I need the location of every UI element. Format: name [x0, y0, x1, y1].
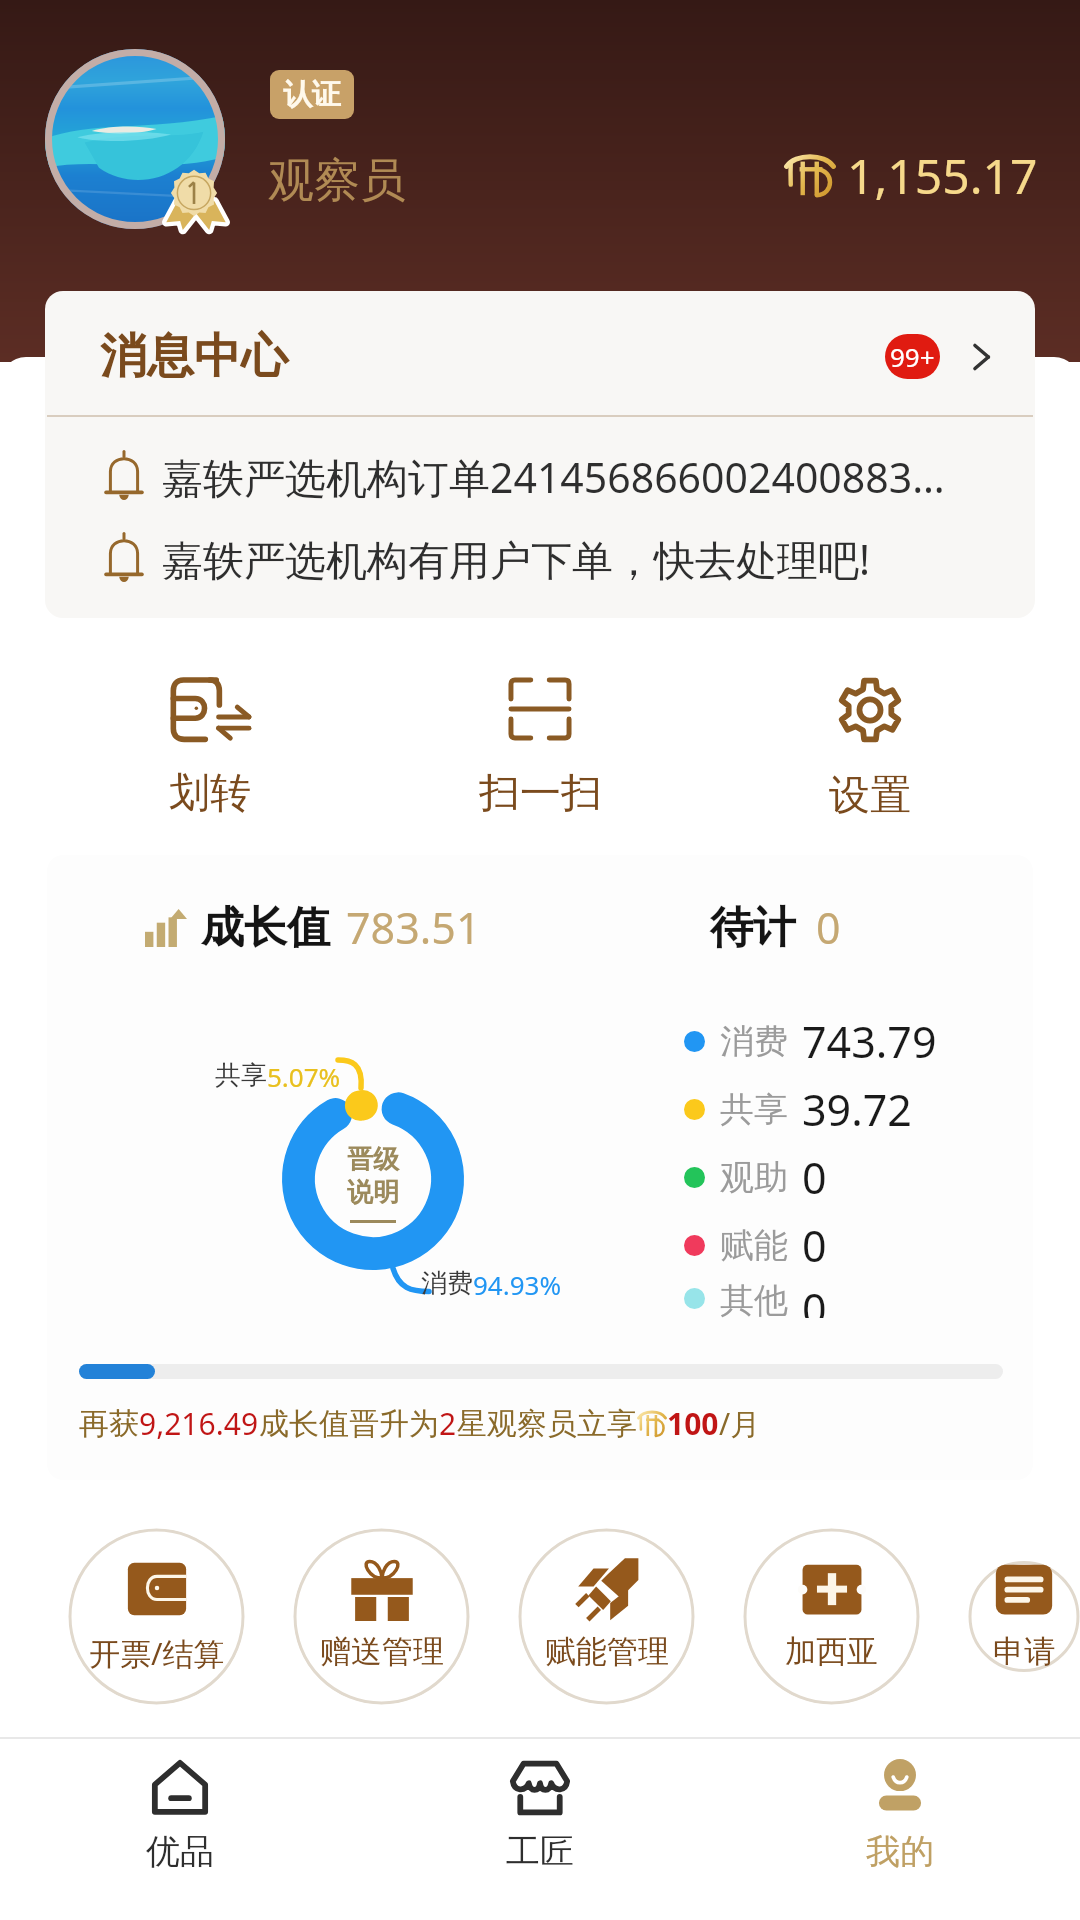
staticText: 嘉轶严选机构订单241456866002400883…	[162, 449, 945, 505]
staticText: 再获	[79, 1405, 139, 1443]
staticText: 赋能管理	[545, 1632, 669, 1671]
staticText: 说明	[347, 1176, 399, 1209]
button[interactable]: 工匠	[360, 1739, 720, 1920]
button[interactable]: 嘉轶严选机构订单241456866002400883…	[45, 446, 1035, 508]
staticText: 100	[667, 1403, 719, 1444]
staticText: 赋能	[720, 1224, 788, 1267]
staticText: 39.72	[802, 1080, 912, 1139]
staticText: 晋级	[347, 1143, 399, 1176]
button[interactable]: 优品	[0, 1739, 360, 1920]
staticText: 划转	[169, 768, 251, 820]
staticText: 其他	[720, 1279, 788, 1318]
staticText: 消息中心	[100, 327, 288, 386]
staticText: 2	[439, 1403, 457, 1444]
button[interactable]: 消息中心	[45, 291, 1035, 415]
button[interactable]: 划转	[120, 660, 300, 820]
staticText: 观助	[720, 1156, 788, 1199]
staticText: 94.93%	[473, 1267, 562, 1302]
button[interactable]: 嘉轶严选机构有用户下单，快去处理吧!	[45, 528, 1035, 590]
staticText: 9,216.49	[139, 1403, 259, 1444]
button[interactable]: 我的	[720, 1739, 1080, 1920]
staticText: 0	[802, 1216, 827, 1275]
staticText: 共享	[215, 1059, 267, 1092]
staticText: 0	[816, 898, 841, 957]
button[interactable]: 认证	[270, 70, 354, 119]
staticText: 0	[802, 1279, 827, 1318]
staticText: 783.51	[346, 898, 481, 957]
staticText: 5.07%	[267, 1059, 341, 1094]
button[interactable]: 赋能	[684, 1211, 827, 1279]
button[interactable]: 申请	[968, 1528, 1080, 1705]
staticText: 待计	[710, 901, 796, 955]
button[interactable]: 其他	[684, 1279, 827, 1318]
button[interactable]: 赠送管理	[293, 1528, 470, 1705]
staticText: 成长值	[201, 901, 330, 955]
staticText: 工匠	[506, 1830, 574, 1873]
staticText: 扫一扫	[479, 768, 602, 820]
staticText: 我的	[866, 1830, 934, 1873]
staticText: 99+	[890, 339, 935, 374]
staticText: 优品	[146, 1830, 214, 1873]
staticText: 星观察员立享	[457, 1405, 637, 1443]
staticText: /月	[719, 1403, 761, 1444]
staticText: 申请	[993, 1632, 1055, 1671]
staticText: 设置	[829, 770, 911, 820]
button[interactable]: 扫一扫	[450, 660, 630, 820]
staticText: 开票/结算	[89, 1632, 225, 1674]
staticText: 1,155.17	[847, 143, 1038, 208]
staticText: 消费	[421, 1267, 473, 1300]
button[interactable]: 观助	[684, 1143, 827, 1211]
button[interactable]: 开票/结算	[68, 1528, 245, 1705]
staticText: 共享	[720, 1088, 788, 1131]
button[interactable]: 加西亚	[743, 1528, 920, 1705]
staticText: 0	[802, 1148, 827, 1207]
button[interactable]: 设置	[780, 660, 960, 820]
staticText: 成长值晋升为	[259, 1405, 439, 1443]
staticText: 743.79	[802, 1012, 937, 1071]
button[interactable]: 消费	[684, 1007, 937, 1075]
staticText: 嘉轶严选机构有用户下单，快去处理吧!	[162, 531, 871, 587]
other: More	[966, 341, 998, 373]
staticText: 消费	[720, 1020, 788, 1063]
button[interactable]: 共享	[684, 1075, 912, 1143]
staticText: 赠送管理	[320, 1632, 444, 1671]
staticText: 加西亚	[785, 1632, 878, 1671]
staticText: 观察员	[268, 152, 406, 210]
staticText: 认证	[283, 76, 341, 113]
button[interactable]: 赋能管理	[518, 1528, 695, 1705]
